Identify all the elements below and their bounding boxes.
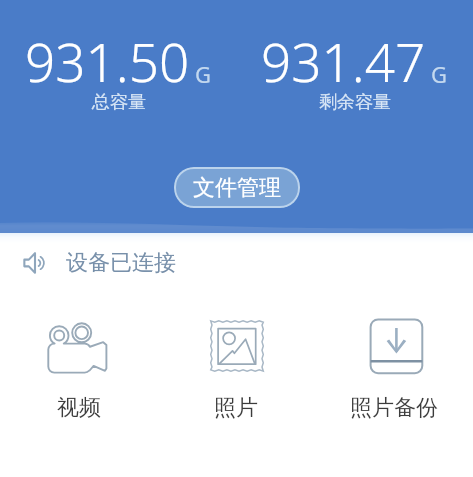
staticText: G bbox=[195, 59, 212, 89]
button[interactable]: Photo backup bbox=[342, 318, 446, 422]
staticText: 设备已连接 bbox=[66, 249, 176, 277]
other: Video bbox=[48, 318, 110, 377]
button[interactable]: Photos bbox=[197, 318, 275, 422]
staticText: 总容量 bbox=[92, 91, 146, 114]
other: Photo backup bbox=[363, 318, 425, 377]
staticText: 照片备份 bbox=[350, 394, 438, 422]
button[interactable]: Video bbox=[40, 318, 118, 422]
staticText: 照片 bbox=[214, 394, 258, 422]
staticText: G bbox=[431, 59, 448, 89]
staticText: 剩余容量 bbox=[319, 91, 391, 114]
staticText: 931.47 bbox=[261, 25, 426, 97]
other: Photos bbox=[205, 318, 267, 377]
staticText: 文件管理 bbox=[193, 174, 281, 202]
button[interactable]: 文件管理 bbox=[174, 167, 300, 208]
button[interactable]: 设备已连接 bbox=[0, 245, 473, 281]
staticText: 视频 bbox=[57, 394, 101, 422]
staticText: 931.50 bbox=[25, 25, 190, 97]
